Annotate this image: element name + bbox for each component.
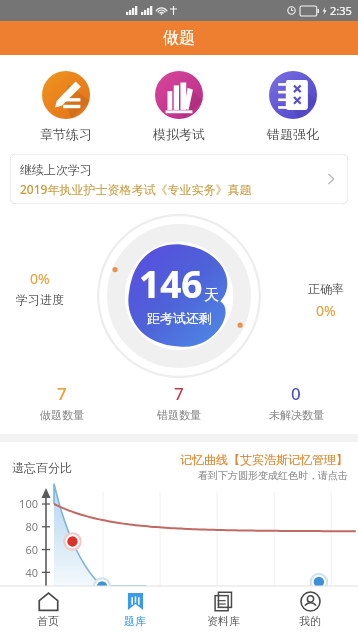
staticText: 记忆曲线【艾宾浩斯记忆管理】 [180, 452, 348, 467]
button[interactable]: 模拟考试 [131, 69, 227, 144]
button[interactable]: 7 [7, 382, 117, 422]
staticText: 做题数量 [40, 408, 84, 422]
staticText: 146 [139, 258, 203, 308]
staticText: 继续上次学习 [20, 162, 92, 177]
staticText: 7 [57, 382, 67, 405]
staticText: 错题强化 [267, 126, 319, 142]
staticText: 7 [174, 382, 184, 405]
staticText: 错题数量 [157, 408, 201, 422]
staticText: 80 [0, 519, 38, 534]
staticText: 0 [291, 382, 301, 405]
button[interactable]: 章节练习 [18, 69, 114, 144]
staticText: 首页 [37, 614, 59, 628]
staticText: 40 [0, 565, 38, 580]
staticText: 做题 [163, 28, 195, 48]
staticText: 0% [30, 269, 50, 288]
staticText: 模拟考试 [153, 126, 205, 142]
staticText: 100 [0, 496, 38, 511]
staticText: 遗忘百分比 [12, 460, 72, 475]
staticText: 我的 [299, 614, 321, 628]
button[interactable]: 首页 [8, 589, 88, 630]
staticText: 未解决数量 [269, 408, 324, 422]
staticText: 2:35 [330, 3, 352, 18]
staticText: 距考试还剩 [147, 310, 212, 326]
staticText: 资料库 [207, 614, 240, 628]
staticText: 学习进度 [16, 292, 64, 307]
button[interactable]: 继续上次学习 [10, 154, 348, 204]
staticText: 60 [0, 542, 38, 557]
staticText: 天 [204, 286, 219, 305]
staticText: 2019年执业护士资格考试《专业实务》真题 [20, 181, 252, 197]
staticText: 正确率 [308, 281, 344, 296]
staticText: 章节练习 [40, 126, 92, 142]
button[interactable]: 7 [124, 382, 234, 422]
button[interactable]: 我的 [270, 589, 350, 630]
staticText: 0% [316, 301, 336, 320]
staticText: 题库 [124, 614, 146, 628]
staticText: 看到下方圆形变成红色时，请点击 [198, 469, 348, 482]
button[interactable]: 资料库 [183, 589, 263, 630]
button[interactable]: 0 [241, 382, 351, 422]
button[interactable]: 题库 [95, 589, 175, 630]
button[interactable]: 错题强化 [245, 69, 341, 144]
